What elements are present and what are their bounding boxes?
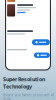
- staticText: Super Resolution: [3, 76, 45, 83]
- button[interactable]: Share: [34, 53, 50, 58]
- staticText: Technology: [3, 83, 32, 90]
- button[interactable]: Upgrade: [32, 39, 50, 45]
- staticText: Enhance your favorite photos with AI det…: [3, 93, 54, 100]
